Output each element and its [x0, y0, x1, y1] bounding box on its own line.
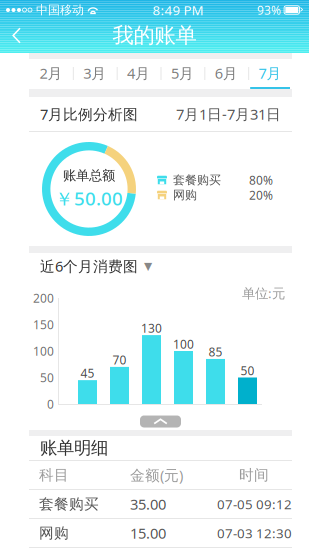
staticText: ￥50.00	[55, 186, 123, 211]
staticText: 账单总额	[63, 167, 115, 184]
button[interactable]: Collapse chart	[140, 415, 181, 427]
staticText: 7月1日-7月31日	[176, 104, 281, 124]
staticText: 3月	[83, 63, 106, 83]
staticText: 07-05 09:12	[217, 495, 292, 513]
staticText: 35.00	[130, 494, 166, 514]
button[interactable]: 5月	[160, 59, 204, 89]
staticText: 2月	[39, 63, 62, 83]
staticText: 单位:元	[242, 284, 285, 302]
staticText: 80%	[249, 172, 273, 188]
staticText: 45	[80, 365, 94, 381]
staticText: ▼	[138, 260, 152, 272]
staticText: 4月	[127, 63, 150, 83]
staticText: 7月比例分析图	[40, 104, 138, 124]
staticText: 20%	[249, 187, 273, 203]
staticText: 85	[208, 344, 222, 360]
staticText: 100	[33, 343, 54, 359]
staticText: 93%	[257, 2, 284, 18]
staticText: 账单明细	[40, 437, 108, 459]
staticText: 07-03 12:30	[217, 524, 292, 542]
button[interactable]: 2月	[29, 59, 73, 89]
staticText: 0	[47, 396, 54, 412]
staticText: 150	[33, 316, 54, 332]
staticText: 8:49 PM	[153, 1, 204, 19]
button[interactable]: 3月	[73, 59, 117, 89]
button[interactable]: Back	[0, 20, 34, 51]
staticText: 科目	[39, 466, 69, 484]
staticText: 100	[173, 336, 194, 352]
staticText: 70	[112, 352, 126, 368]
staticText: 套餐购买	[39, 495, 99, 513]
staticText: 6月	[215, 63, 238, 83]
staticText: 时间	[239, 466, 269, 484]
button[interactable]: 6月	[204, 59, 248, 89]
staticText: 50	[240, 362, 254, 378]
staticText: 200	[33, 290, 54, 306]
staticText: 130	[141, 320, 162, 336]
staticText: 套餐购买	[173, 173, 221, 187]
staticText: 近6个月消费图	[40, 256, 138, 276]
button[interactable]: 4月	[117, 59, 160, 89]
staticText: 中国移动	[32, 3, 88, 17]
staticText: 7月	[259, 63, 282, 83]
staticText: 我的账单	[112, 22, 196, 49]
staticText: 50	[40, 369, 54, 385]
staticText: 网购	[39, 524, 69, 542]
staticText: 金额(元)	[130, 465, 183, 485]
staticText: 15.00	[130, 523, 166, 543]
staticText: 5月	[171, 63, 194, 83]
staticText: 网购	[173, 188, 197, 202]
button[interactable]: 7月	[248, 59, 292, 89]
